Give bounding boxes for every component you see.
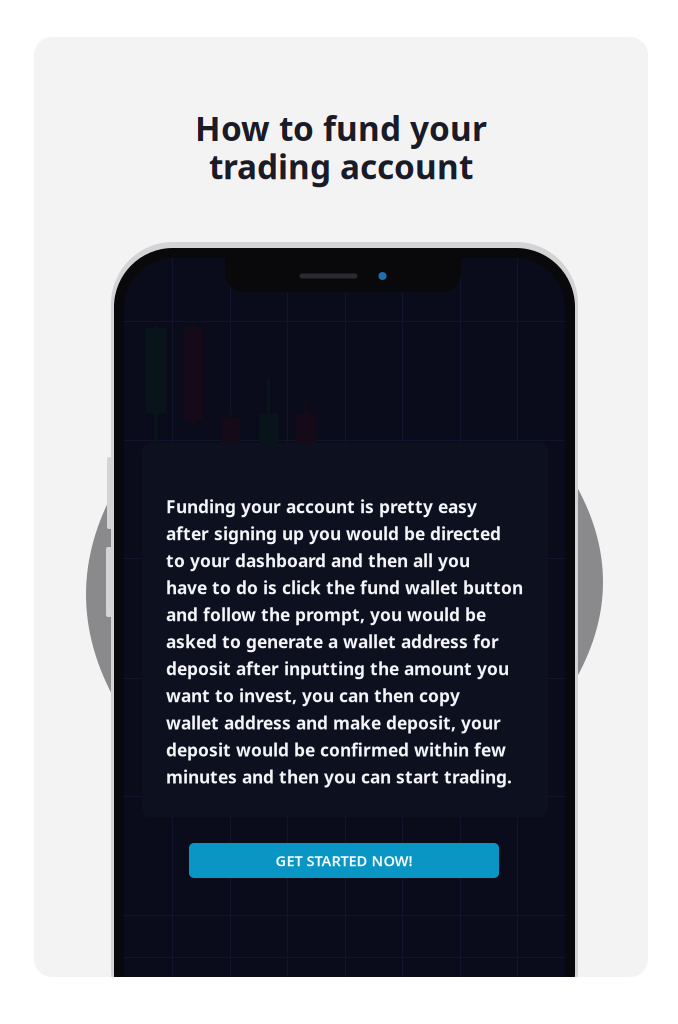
staticText: How to fund your [195,106,487,150]
staticText: to your dashboard and then all you [166,549,470,572]
staticText: after signing up you would be directed [166,522,501,545]
staticText: have to do is click the fund wallet butt… [166,576,523,599]
staticText: GET STARTED NOW! [275,851,412,870]
staticText: trading account [209,144,473,189]
button[interactable]: GET STARTED NOW! [189,843,499,878]
staticText: want to invest, you can then copy [166,684,460,707]
staticText: Funding your account is pretty easy [166,495,477,518]
staticText: and follow the prompt, you would be [166,603,486,626]
staticText: deposit would be confirmed within few [166,738,506,761]
staticText: minutes and then you can start trading. [166,765,512,788]
staticText: deposit after inputting the amount you [166,657,509,680]
staticText: asked to generate a wallet address for [166,630,499,653]
staticText: wallet address and make deposit, your [166,711,501,734]
